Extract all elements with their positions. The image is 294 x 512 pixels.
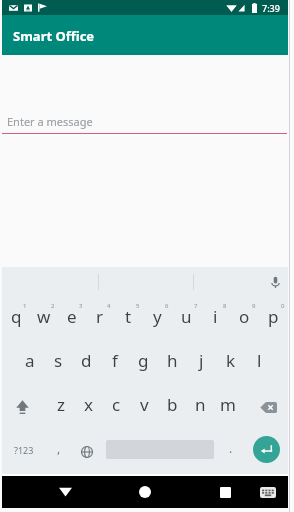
staticText: q [11,305,22,328]
staticText: 5 [136,302,140,310]
button[interactable]: m [214,385,242,429]
staticText: p [268,305,279,328]
staticText: 3 [79,302,83,310]
staticText: b [167,393,178,416]
button[interactable]: c [102,385,130,429]
staticText: d [81,349,92,372]
button[interactable]: , [47,429,71,474]
button[interactable]: Voice input [271,276,280,289]
button[interactable]: v [130,385,158,429]
staticText: w [37,305,51,328]
button[interactable]: Back [49,476,81,508]
staticText: h [167,349,178,372]
button[interactable]: Home [129,476,161,508]
staticText: 7 [194,302,198,310]
button[interactable]: f [100,341,129,385]
staticText: Enter a message [7,114,93,129]
staticText: 1 [23,302,27,310]
button[interactable]: s [44,341,72,385]
staticText: g [138,349,149,372]
staticText: u [181,305,192,328]
staticText: k [226,349,236,372]
staticText: l [257,349,262,372]
button[interactable]: Shift [2,385,47,429]
button[interactable]: p [259,297,288,341]
button[interactable]: y [143,297,172,341]
button[interactable]: q [2,297,30,341]
staticText: r [96,305,104,328]
staticText: 6 [165,302,169,310]
staticText: s [54,349,63,372]
button[interactable]: ?123 [8,429,40,474]
button[interactable]: i [201,297,230,341]
staticText: z [57,393,65,416]
staticText: 2 [51,302,55,310]
button[interactable]: b [158,385,186,429]
staticText: m [220,393,236,416]
button[interactable]: k [216,341,245,385]
button[interactable]: Recents [209,476,241,508]
staticText: i [213,305,218,328]
staticText: j [199,349,204,372]
button[interactable]: Switch keyboard [252,476,284,508]
staticText: x [84,393,93,416]
staticText: . [229,440,233,456]
button[interactable]: n [186,385,214,429]
button[interactable]: a [16,341,44,385]
staticText: n [195,393,206,416]
staticText: c [112,393,121,416]
staticText: y [153,305,162,328]
button[interactable]: u [172,297,201,341]
staticText: 7:39 [262,2,280,14]
button[interactable]: l [245,341,274,385]
button[interactable]: d [72,341,100,385]
staticText: 4 [107,302,111,310]
staticText: t [125,305,132,328]
staticText: , [57,440,61,456]
staticText: 8 [223,302,227,310]
staticText: f [112,349,118,372]
button[interactable]: z [47,385,74,429]
button[interactable]: e [58,297,86,341]
button[interactable]: w [30,297,58,341]
staticText: o [239,305,250,328]
staticText: 0 [281,302,285,310]
staticText: 9 [252,302,256,310]
button[interactable]: r [86,297,114,341]
staticText: e [67,305,77,328]
button[interactable]: x [74,385,102,429]
button[interactable] [193,267,288,297]
button[interactable]: o [230,297,259,341]
button[interactable]: Enter a message [2,114,288,134]
button[interactable]: j [187,341,216,385]
button[interactable]: Backspace [242,385,288,429]
staticText: ?123 [14,444,34,456]
button[interactable]: Change language [75,429,99,474]
staticText: a [25,349,35,372]
button[interactable]: h [158,341,187,385]
button[interactable]: . [219,429,243,474]
button[interactable]: Enter [253,436,280,463]
staticText: v [140,393,149,416]
button[interactable]: t [114,297,143,341]
button[interactable]: g [129,341,158,385]
staticText: Smart Office [13,27,95,45]
